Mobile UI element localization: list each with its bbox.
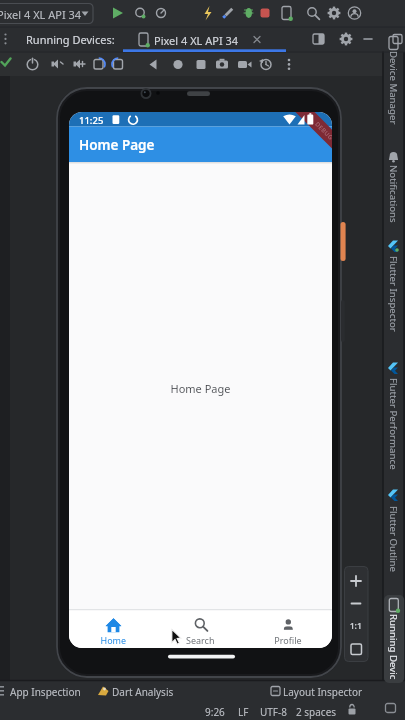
button[interactable] <box>244 610 332 648</box>
button[interactable] <box>0 681 88 700</box>
button[interactable] <box>388 29 405 49</box>
button[interactable] <box>89 54 109 75</box>
button[interactable] <box>344 3 365 24</box>
button[interactable] <box>69 610 157 648</box>
button[interactable] <box>233 54 254 75</box>
button[interactable] <box>190 54 211 75</box>
button[interactable] <box>383 237 405 339</box>
button[interactable] <box>336 29 356 49</box>
button[interactable] <box>255 54 276 75</box>
button[interactable] <box>279 54 298 75</box>
button[interactable] <box>46 54 67 75</box>
button[interactable] <box>302 3 322 24</box>
button[interactable] <box>106 3 130 24</box>
button[interactable] <box>268 681 378 700</box>
button[interactable] <box>0 3 93 24</box>
button[interactable] <box>383 595 405 683</box>
button[interactable] <box>22 54 43 75</box>
button[interactable] <box>219 3 239 24</box>
button[interactable] <box>324 3 344 24</box>
button[interactable] <box>198 3 219 24</box>
button[interactable] <box>344 592 368 614</box>
button[interactable] <box>239 3 258 24</box>
button[interactable] <box>383 36 405 131</box>
button[interactable] <box>167 54 188 75</box>
button[interactable] <box>68 54 89 75</box>
button[interactable] <box>130 3 151 24</box>
button[interactable] <box>277 3 296 24</box>
button[interactable] <box>256 3 274 24</box>
button[interactable] <box>108 54 128 75</box>
button[interactable] <box>157 610 244 648</box>
button[interactable] <box>344 614 368 638</box>
button[interactable] <box>383 486 405 580</box>
button[interactable] <box>383 358 405 478</box>
button[interactable] <box>344 567 368 591</box>
button[interactable] <box>358 29 378 49</box>
button[interactable] <box>344 638 368 661</box>
button[interactable] <box>151 3 172 24</box>
button[interactable] <box>142 54 163 75</box>
button[interactable] <box>211 54 232 75</box>
button[interactable] <box>308 29 328 49</box>
button[interactable] <box>95 681 185 700</box>
button[interactable] <box>123 27 286 52</box>
button[interactable] <box>383 148 405 226</box>
